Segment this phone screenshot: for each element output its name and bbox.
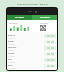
button[interactable] <box>44 46 56 50</box>
button[interactable] <box>44 34 56 38</box>
button[interactable]: Rent <box>7 63 57 69</box>
staticText: MY BILLS <box>15 16 24 19</box>
button[interactable]: Gas <box>7 57 57 63</box>
staticText: 9:41 <box>28 10 33 13</box>
button[interactable] <box>44 52 56 56</box>
staticText: Internet <box>8 46 17 49</box>
staticText: SCAN BILL <box>40 22 49 24</box>
button[interactable] <box>44 64 56 68</box>
button[interactable]: Phone <box>7 51 57 57</box>
button[interactable]: PAYMENTS <box>32 15 57 20</box>
other: Scan bill QR code <box>40 25 48 31</box>
button[interactable] <box>44 58 56 62</box>
staticText: SPENDING <box>9 22 18 24</box>
staticText: Gas <box>8 58 12 61</box>
staticText: Rent <box>8 64 13 67</box>
staticText: PAYMENTS <box>40 16 50 19</box>
staticText: Water <box>8 40 15 43</box>
button[interactable]: SPENDING <box>8 21 31 32</box>
button[interactable]: Internet <box>7 45 57 51</box>
button[interactable]: MY BILLS <box>7 15 32 20</box>
button[interactable] <box>44 40 56 44</box>
staticText: Phone <box>8 52 15 55</box>
button[interactable]: Electric <box>7 33 57 39</box>
staticText: Electric <box>8 34 16 37</box>
button[interactable]: Water <box>7 39 57 45</box>
button[interactable]: SCAN BILL <box>32 21 56 32</box>
staticText: Save with bills easy keep at <box>17 2 48 5</box>
